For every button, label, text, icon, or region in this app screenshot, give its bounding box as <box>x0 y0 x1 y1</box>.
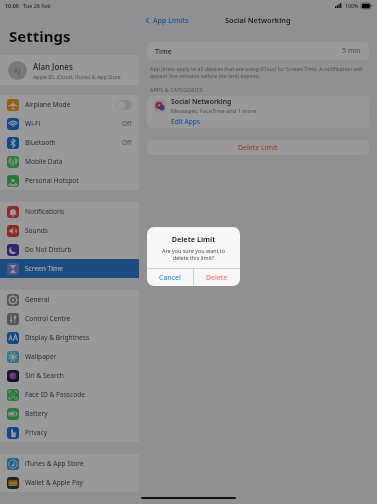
button[interactable]: General <box>0 290 139 309</box>
staticText: General <box>25 295 132 304</box>
staticText: Privacy <box>25 428 132 437</box>
staticText: Control Centre <box>25 314 132 323</box>
staticText: Battery <box>25 409 132 418</box>
staticText: Sounds <box>25 226 132 235</box>
staticText: APPS & CATEGORIES <box>150 86 203 93</box>
button[interactable]: Cancel <box>147 269 193 286</box>
staticText: Screen Time <box>25 264 132 273</box>
button[interactable]: AJ <box>0 55 139 85</box>
staticText: Social Networking <box>225 15 291 25</box>
button[interactable]: Mobile Data <box>0 152 139 171</box>
staticText: Alan Jones <box>33 61 73 72</box>
staticText: Display & Brightness <box>25 333 132 342</box>
staticText: Edit Apps <box>171 117 200 126</box>
staticText: 5 min <box>342 46 361 56</box>
staticText: Bluetooth <box>25 138 122 147</box>
staticText: 100% <box>345 2 359 9</box>
staticText: Wi-Fi <box>25 119 122 128</box>
button[interactable]: Bluetooth <box>0 133 139 152</box>
staticText: AJ <box>14 66 21 75</box>
button[interactable]: Sounds <box>0 221 139 240</box>
button[interactable]: Privacy <box>0 423 139 442</box>
button[interactable]: Wallet & Apple Pay <box>0 473 139 492</box>
button[interactable]: Wallpaper <box>0 347 139 366</box>
button[interactable]: Delete Limit <box>147 140 369 155</box>
button[interactable]: Notifications <box>0 202 139 221</box>
button[interactable]: Do Not Disturb <box>0 240 139 259</box>
staticText: iTunes & App Store <box>25 459 132 468</box>
staticText: Are you sure you want to delete this lim… <box>154 247 233 261</box>
button[interactable]: Siri & Search <box>0 366 139 385</box>
staticText: Cancel <box>159 273 181 283</box>
staticText: App limits apply to all devices that are… <box>150 65 366 79</box>
button[interactable]: Delete <box>194 269 240 286</box>
staticText: Tue 26 Feb <box>23 2 51 9</box>
staticText: Delete Limit <box>147 234 240 244</box>
staticText: Do Not Disturb <box>25 245 132 254</box>
button[interactable]: Airplane Mode toggle <box>116 100 132 110</box>
button[interactable]: Control Centre <box>0 309 139 328</box>
button[interactable]: Time <box>147 42 369 60</box>
button[interactable]: Battery <box>0 404 139 423</box>
button[interactable]: Face ID & Passcode <box>0 385 139 404</box>
staticText: Notifications <box>25 207 132 216</box>
button[interactable]: Screen Time <box>0 259 139 278</box>
staticText: 10:00 <box>5 2 19 9</box>
staticText: Messages, FaceTime and 1 more <box>171 107 257 115</box>
button[interactable]: App Limits <box>144 15 189 25</box>
staticText: Off <box>122 119 132 128</box>
button[interactable]: Airplane Mode <box>0 95 139 114</box>
staticText: Off <box>122 138 132 147</box>
staticText: Face ID & Passcode <box>25 390 132 399</box>
button[interactable]: iTunes & App Store <box>0 454 139 473</box>
staticText: Delete Limit <box>238 143 278 153</box>
button[interactable]: Display & Brightness <box>0 328 139 347</box>
staticText: Delete <box>206 273 228 283</box>
button[interactable]: Personal Hotspot <box>0 171 139 190</box>
button[interactable]: Social Networking <box>147 96 369 115</box>
staticText: Apple ID, iCloud, iTunes & App Store <box>33 73 121 80</box>
staticText: Wallpaper <box>25 352 132 361</box>
staticText: Settings <box>9 26 71 46</box>
staticText: Personal Hotspot <box>25 176 132 185</box>
staticText: Wallet & Apple Pay <box>25 478 132 487</box>
staticText: Social Networking <box>171 97 232 106</box>
staticText: Airplane Mode <box>25 100 116 109</box>
button[interactable]: Edit Apps <box>147 115 369 128</box>
staticText: Mobile Data <box>25 157 132 166</box>
staticText: App Limits <box>153 15 189 25</box>
button[interactable]: Wi-Fi <box>0 114 139 133</box>
staticText: Siri & Search <box>25 371 132 380</box>
staticText: Time <box>155 46 342 56</box>
